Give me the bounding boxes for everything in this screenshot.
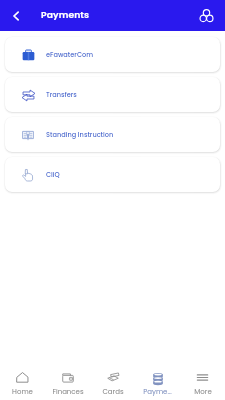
staticText: CliQ (46, 170, 60, 179)
button[interactable]: CliQ (5, 157, 220, 192)
button[interactable]: Back (5, 5, 27, 27)
button[interactable]: Account (198, 8, 214, 24)
staticText: eFawaterCom (46, 50, 94, 59)
button[interactable]: More (180, 367, 225, 400)
button[interactable]: Standing Instruction (5, 117, 220, 152)
staticText: More (194, 387, 212, 397)
button[interactable]: Transfers (5, 77, 220, 112)
button[interactable]: Finances (45, 367, 90, 400)
staticText: Transfers (46, 90, 77, 99)
button[interactable]: Cards (90, 367, 135, 400)
staticText: Home (12, 387, 33, 397)
button[interactable]: eFawaterCom (5, 37, 220, 72)
staticText: Payments (41, 8, 90, 21)
button[interactable]: Payme... (135, 367, 180, 400)
staticText: Cards (102, 387, 124, 397)
staticText: Payme... (143, 387, 172, 397)
staticText: Standing Instruction (46, 130, 114, 139)
button[interactable]: Home (0, 367, 45, 400)
staticText: Finances (52, 387, 84, 397)
